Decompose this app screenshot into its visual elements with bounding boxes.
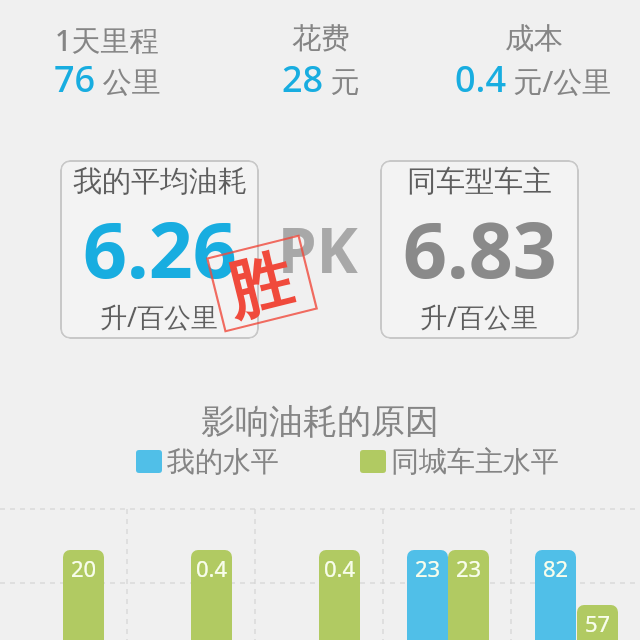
button[interactable]: 1天里程: [0, 0, 214, 110]
button[interactable]: 我的平均油耗: [60, 160, 259, 339]
staticText: 我的水平: [167, 444, 279, 479]
button[interactable]: 成本: [427, 0, 640, 110]
staticText: PK: [278, 207, 358, 277]
staticText: 23: [456, 553, 482, 583]
staticText: 成本: [505, 20, 563, 57]
staticText: 20: [71, 553, 97, 583]
staticText: 胜: [219, 239, 299, 327]
button[interactable]: 同车型车主: [380, 160, 579, 339]
staticText: 我的平均油耗: [73, 163, 247, 200]
staticText: 6.83: [403, 196, 557, 301]
staticText: 同城车主水平: [391, 444, 559, 479]
staticText: 花费: [292, 20, 350, 57]
staticText: 0.4: [324, 553, 356, 583]
staticText: 23: [415, 553, 441, 583]
staticText: 82: [543, 553, 569, 583]
button[interactable]: 花费: [214, 0, 427, 110]
staticText: 0.4: [196, 553, 228, 583]
staticText: 57: [585, 608, 611, 638]
staticText: 28 元: [282, 54, 360, 103]
staticText: 升/百公里: [100, 298, 219, 335]
staticText: 影响油耗的原因: [201, 400, 439, 440]
staticText: 6.26: [83, 196, 237, 301]
staticText: 1天里程: [55, 20, 159, 60]
staticText: 76 公里: [54, 54, 161, 103]
staticText: 0.4 元/公里: [455, 54, 612, 103]
staticText: 升/百公里: [420, 298, 539, 335]
staticText: 同车型车主: [407, 163, 552, 200]
